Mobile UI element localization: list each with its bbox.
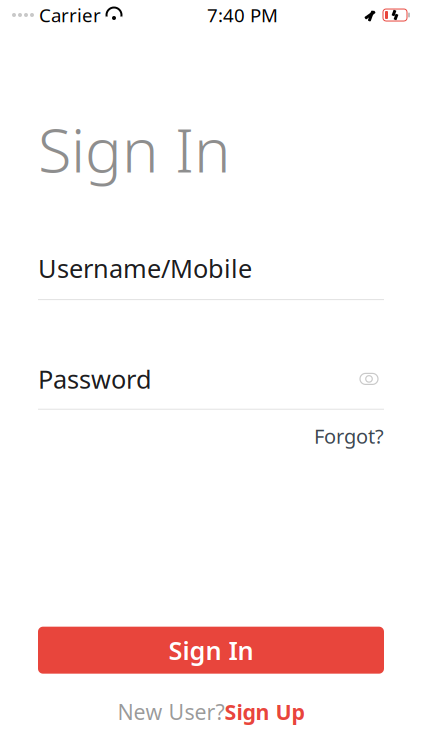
staticText: Carrier [39, 3, 101, 27]
staticText: Username/Mobile [38, 251, 252, 285]
button[interactable]: Sign In [38, 627, 384, 674]
button[interactable]: Show password [354, 367, 384, 391]
staticText: Sign In [168, 633, 253, 667]
staticText: New User? [117, 698, 224, 726]
button[interactable]: Sign Up [224, 698, 304, 726]
staticText: Password [38, 362, 152, 396]
staticText: Sign Up [224, 698, 304, 726]
staticText: 7:40 PM [207, 3, 278, 27]
staticText: Sign In [38, 108, 231, 189]
staticText: Forgot? [314, 423, 384, 449]
button[interactable]: Forgot? [314, 420, 384, 452]
